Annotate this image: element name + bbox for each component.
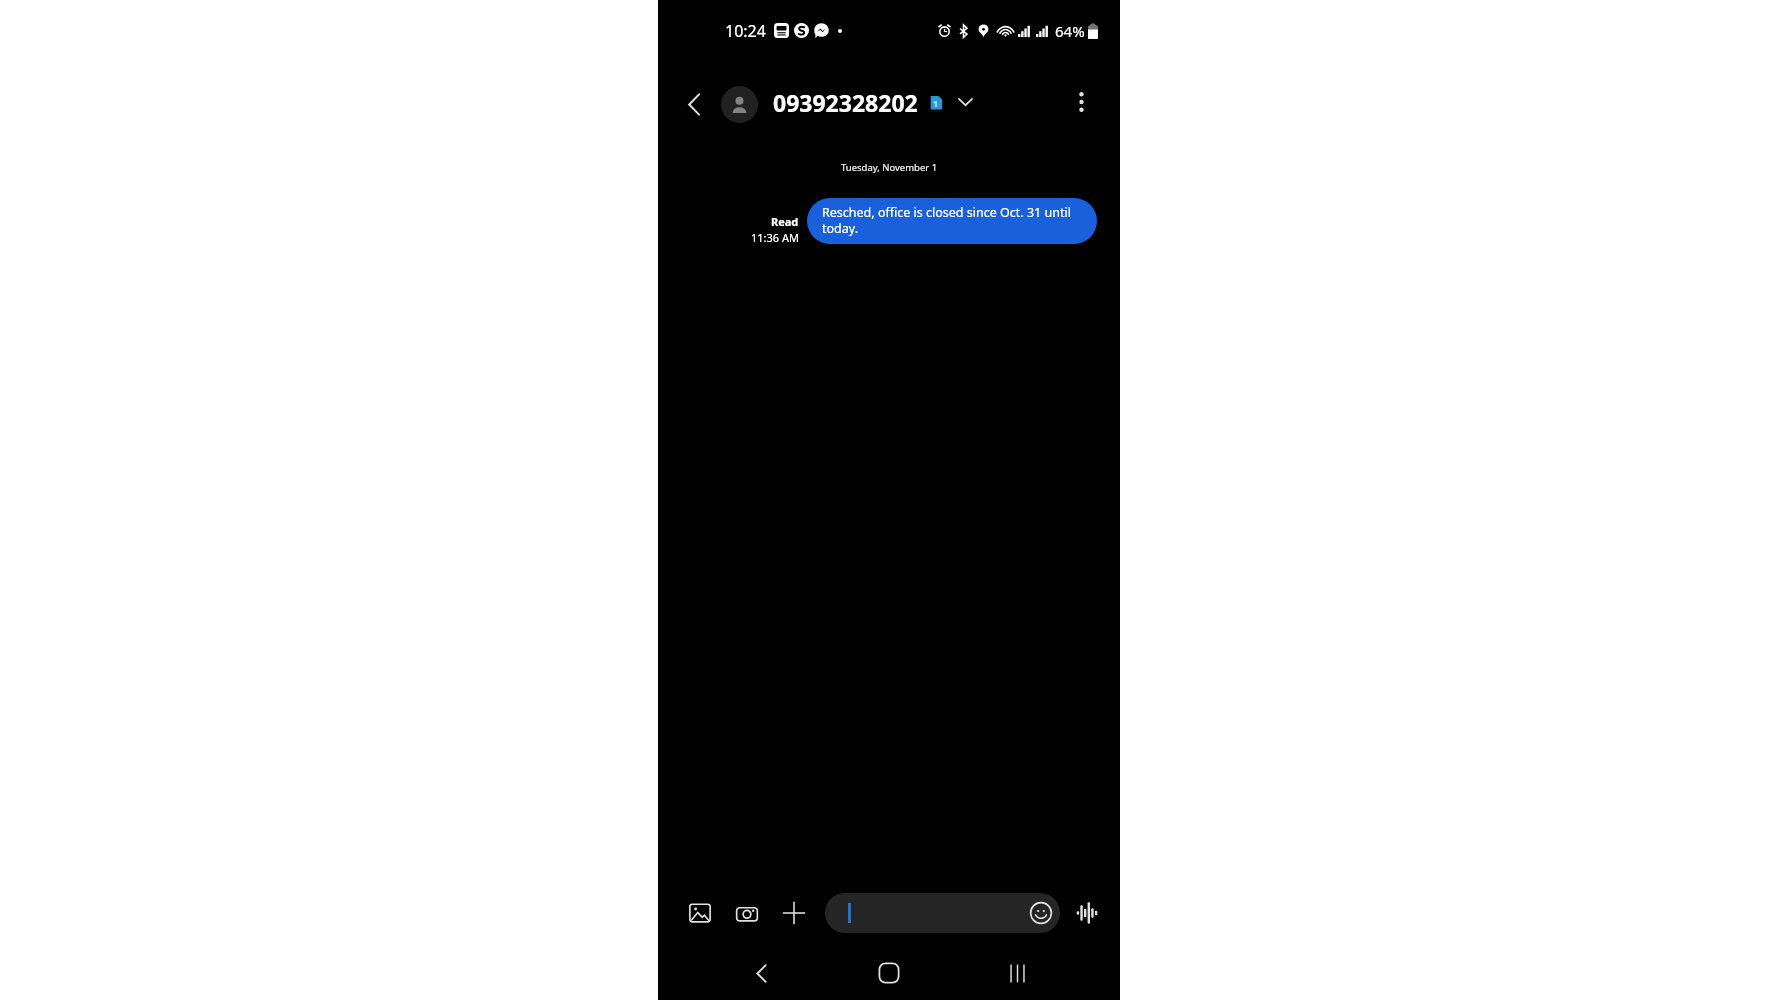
staticText: 11:36 AM — [751, 230, 799, 245]
button[interactable]: Expand details — [952, 89, 978, 115]
staticText: 09392328202 — [773, 87, 918, 118]
button[interactable]: Back — [735, 946, 787, 1000]
staticText: 64% — [1055, 21, 1085, 41]
staticText: Read — [771, 214, 799, 229]
button[interactable]: Camera — [729, 895, 765, 931]
button[interactable]: Gallery — [682, 895, 718, 931]
button[interactable]: Add attachment — [776, 895, 812, 931]
button[interactable]: Contact photo — [721, 86, 758, 123]
button[interactable]: Recent apps — [991, 946, 1043, 1000]
button[interactable]: Resched, office is closed since Oct. 31 … — [807, 198, 1097, 244]
button[interactable]: Back — [678, 88, 710, 120]
button[interactable]: More options — [1064, 85, 1098, 119]
button[interactable]: Home — [863, 946, 915, 1000]
staticText: Resched, office is closed since Oct. 31 … — [822, 204, 1079, 237]
button[interactable]: Voice message — [1070, 896, 1104, 930]
staticText: 10:24 — [725, 20, 766, 42]
staticText: Tuesday, November 1 — [841, 161, 938, 174]
staticText: 1 — [933, 97, 939, 109]
button[interactable] — [825, 893, 1060, 933]
